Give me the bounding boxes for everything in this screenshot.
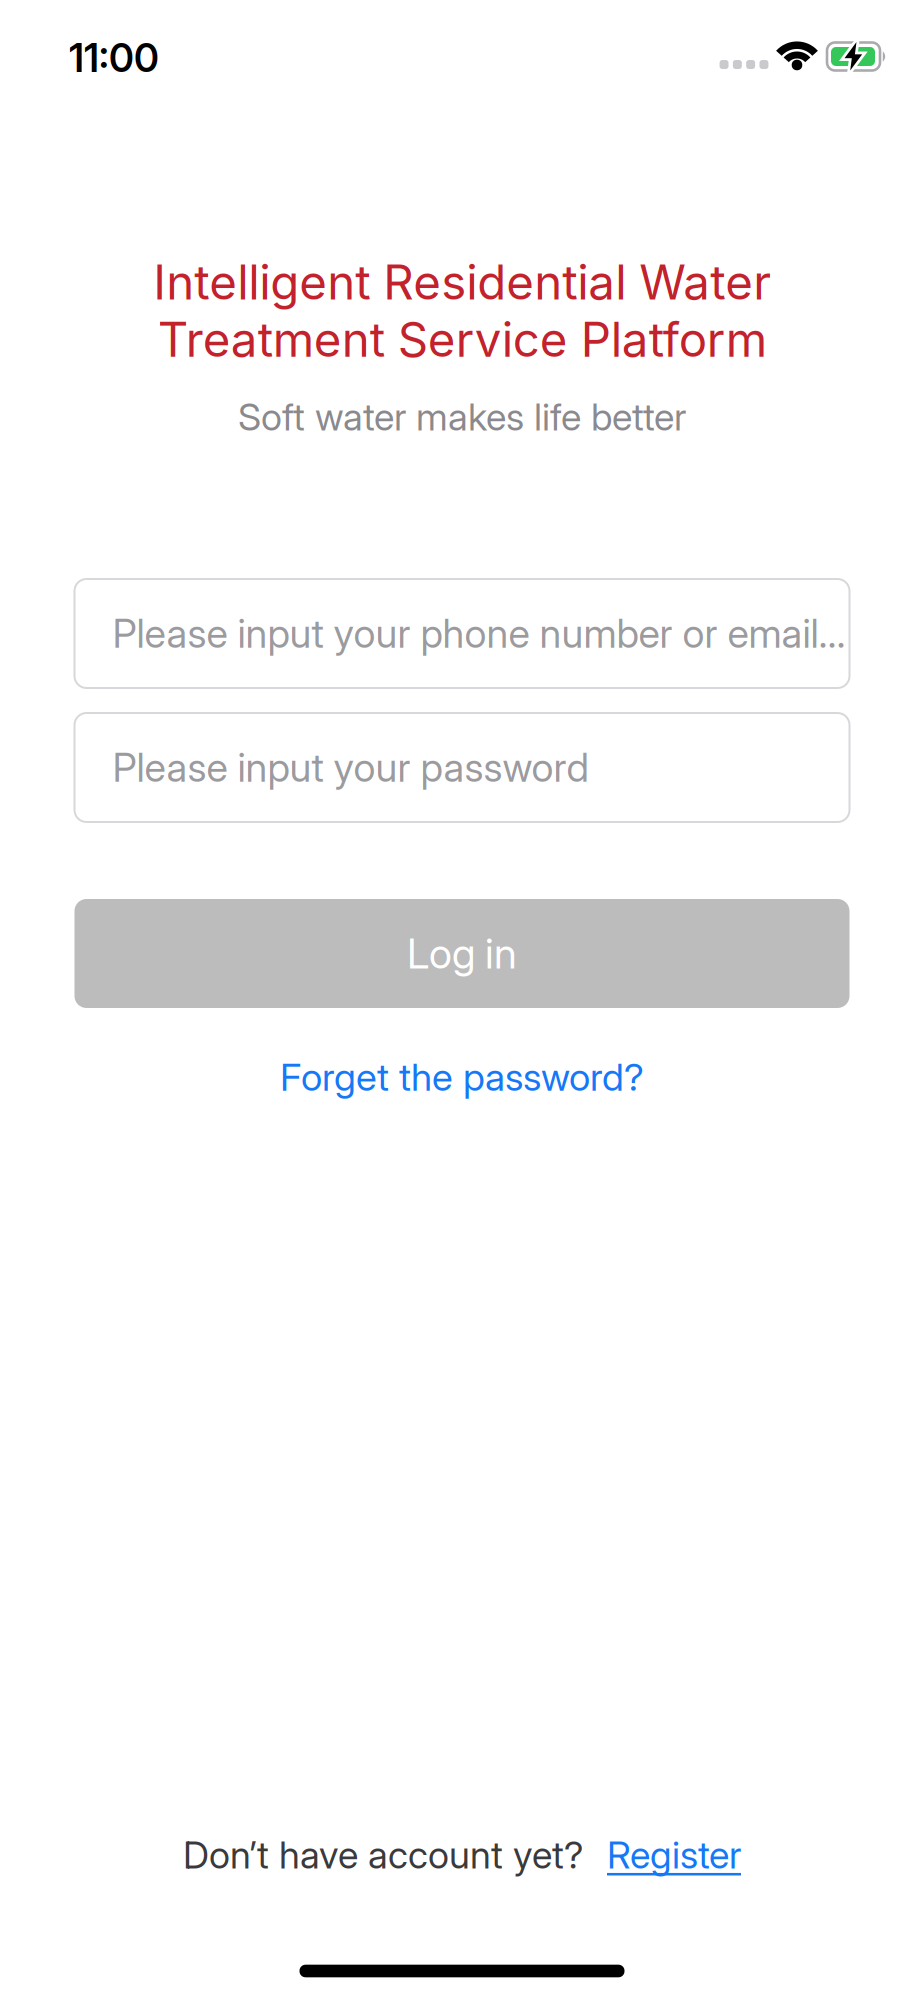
staticText: Intelligent Residential Water Treatment … [153, 254, 771, 368]
staticText: Forget the password? [280, 1054, 644, 1100]
staticText: Please input your password [112, 744, 588, 791]
staticText: 11:00 [69, 35, 159, 81]
staticText: Don’t have account yet? [183, 1832, 583, 1878]
button[interactable]: Forget the password? [280, 1054, 644, 1100]
staticText: Log in [407, 928, 517, 978]
staticText: Soft water makes life better [238, 394, 686, 440]
button[interactable]: Register [607, 1832, 741, 1878]
button[interactable]: Log in [74, 899, 849, 1008]
button[interactable]: Please input your phone number or email… [74, 579, 849, 688]
staticText: Please input your phone number or email… [112, 610, 845, 657]
staticText: Register [607, 1832, 741, 1878]
button[interactable]: Please input your password [74, 713, 849, 822]
